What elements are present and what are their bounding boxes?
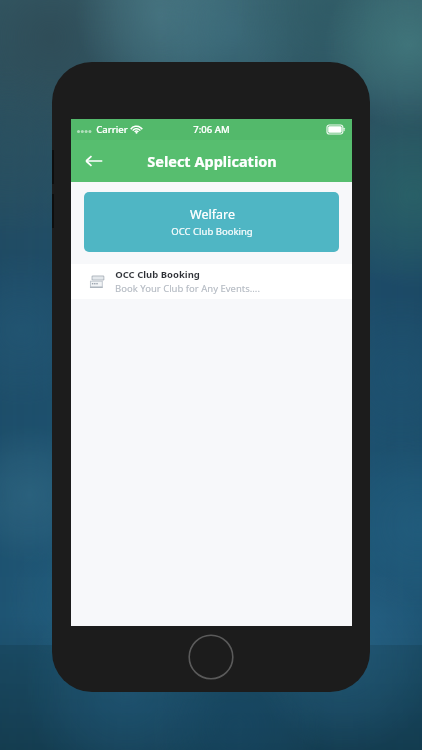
- staticText: Carrier: [96, 123, 128, 136]
- staticText: OCC Club Booking: [115, 268, 200, 281]
- button[interactable]: Welfare: [84, 192, 339, 252]
- staticText: 7:06 AM: [193, 123, 230, 136]
- staticText: OCC Club Booking: [171, 225, 253, 238]
- button[interactable]: Back: [77, 144, 111, 178]
- staticText: Welfare: [190, 206, 235, 223]
- button[interactable]: OCC Club Booking: [71, 264, 352, 299]
- staticText: Select Application: [147, 151, 277, 171]
- staticText: Book Your Club for Any Events....: [115, 282, 260, 295]
